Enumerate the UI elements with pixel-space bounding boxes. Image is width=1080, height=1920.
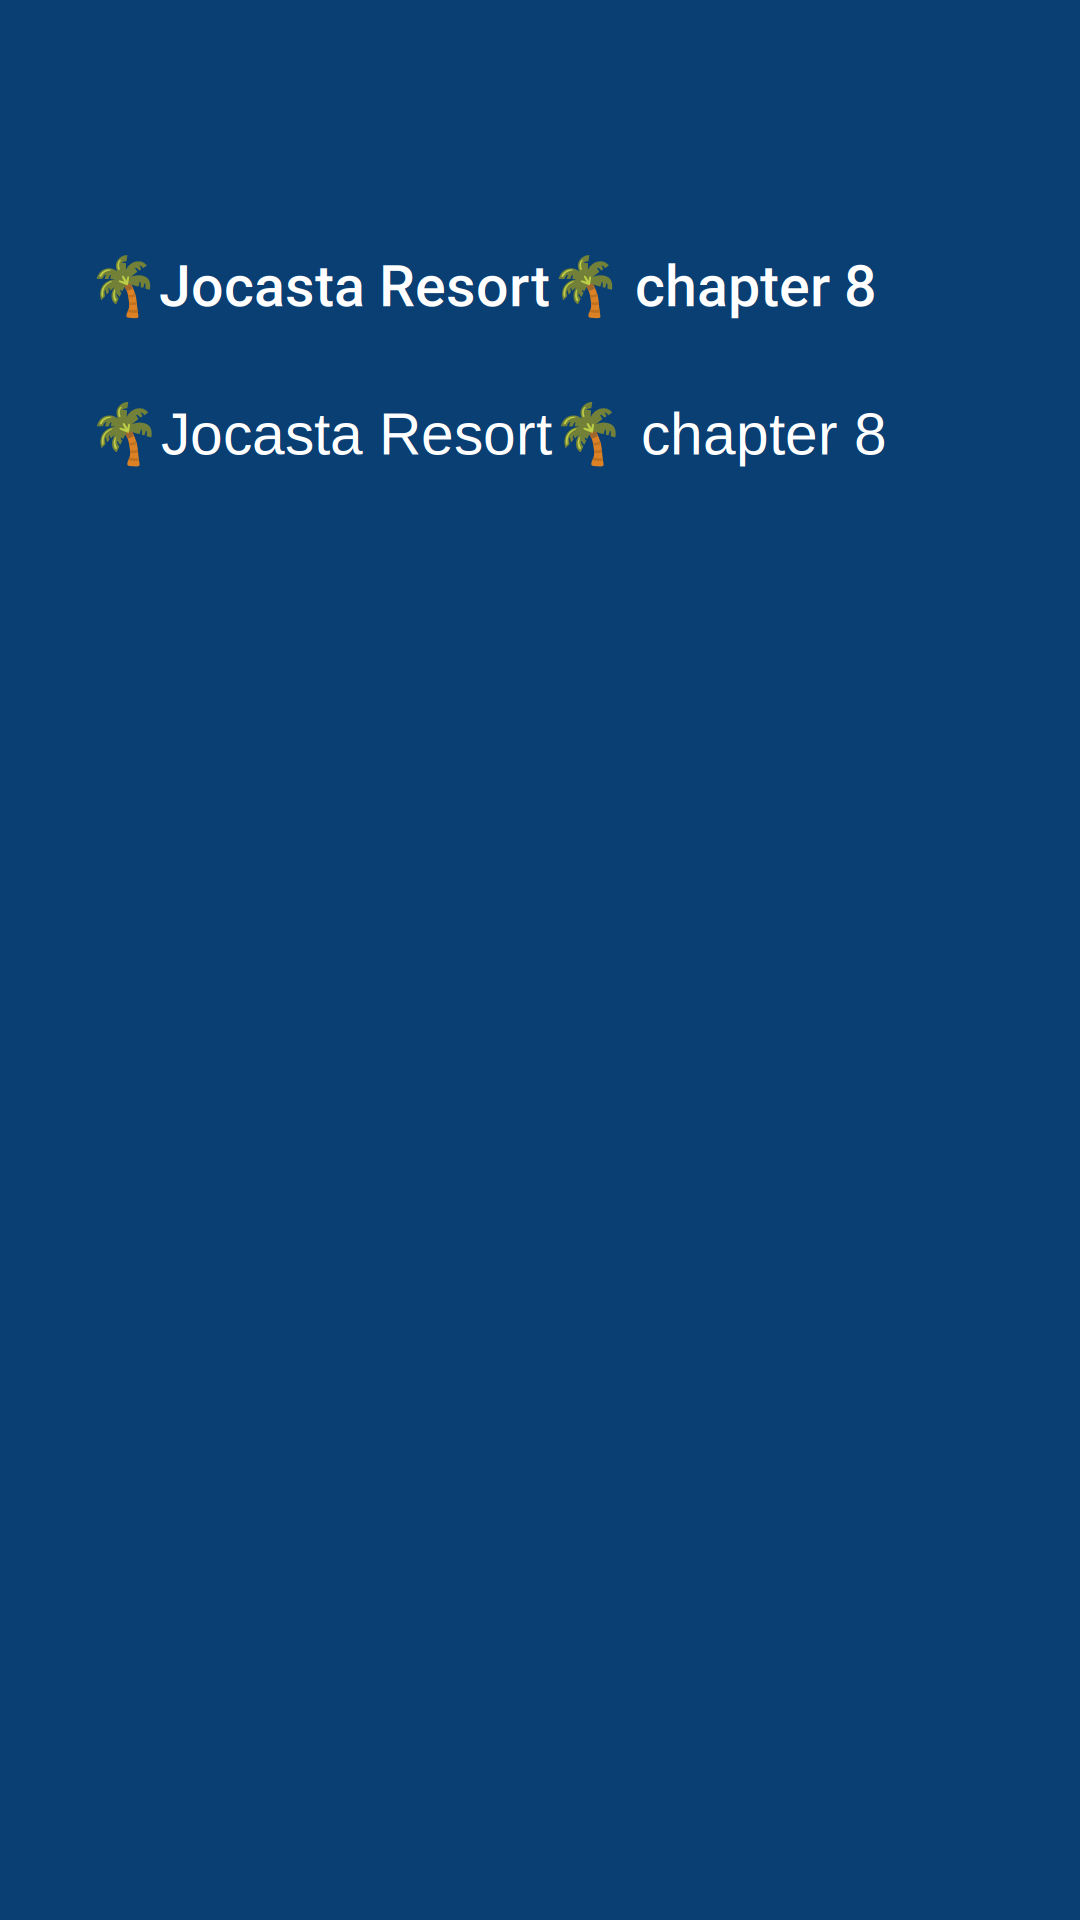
staticText: 🌴Jocasta Resort🌴 chapter 8 <box>88 400 887 469</box>
staticText: 🌴Jocasta Resort🌴 chapter 8 <box>88 253 877 320</box>
